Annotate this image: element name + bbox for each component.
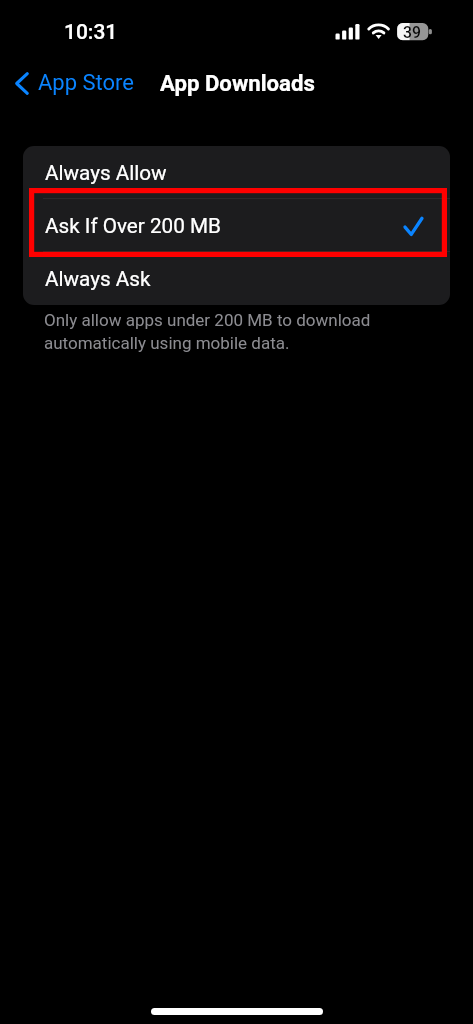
button[interactable]: Always Allow	[23, 146, 450, 199]
staticText: Always Allow	[45, 161, 167, 185]
button[interactable]: App Store	[9, 64, 143, 102]
staticText: Always Ask	[45, 267, 151, 291]
staticText: 10:31	[64, 20, 118, 45]
staticText: 39	[403, 23, 421, 42]
staticText: Only allow apps under 200 MB to download…	[44, 310, 392, 353]
button[interactable]: Always Ask	[23, 252, 450, 305]
staticText: App Store	[38, 70, 135, 96]
staticText: App Downloads	[160, 70, 315, 96]
other: Selected	[405, 217, 422, 235]
staticText: Ask If Over 200 MB	[45, 214, 221, 238]
button[interactable]: Ask If Over 200 MB	[23, 199, 450, 252]
